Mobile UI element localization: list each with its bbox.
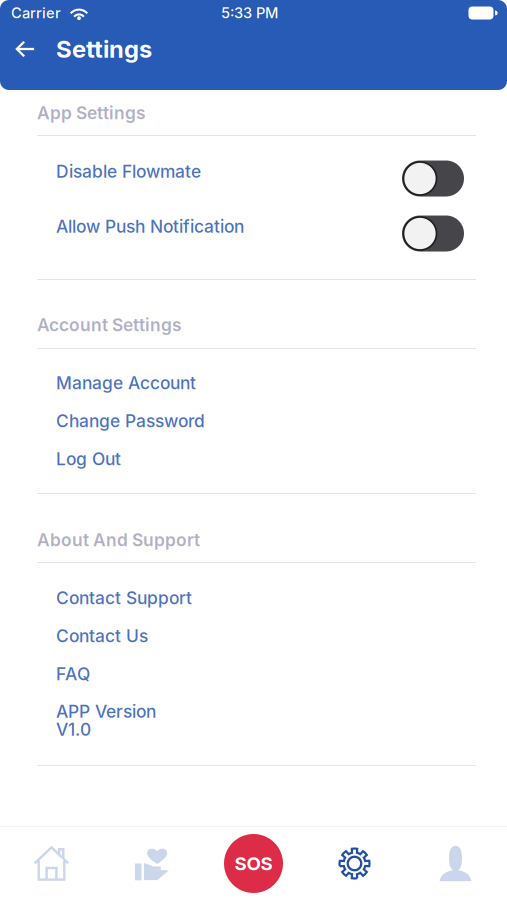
staticText: Contact Us	[56, 625, 148, 646]
staticText: App Settings	[37, 102, 146, 123]
staticText: Allow Push Notification	[56, 216, 244, 237]
staticText: FAQ	[56, 663, 90, 684]
button[interactable]: Settings	[304, 827, 405, 900]
staticText: Manage Account	[56, 372, 196, 393]
staticText: SOS	[234, 852, 272, 875]
button[interactable]: Contact Us	[0, 617, 507, 655]
staticText: 5:33 PM	[221, 4, 278, 22]
staticText: APP Version	[56, 701, 156, 722]
button[interactable]: FAQ	[0, 655, 507, 693]
button[interactable]: Disable Flowmate	[0, 144, 507, 199]
staticText: Disable Flowmate	[56, 161, 201, 182]
staticText: About And Support	[37, 529, 200, 550]
button[interactable]: Care	[102, 827, 203, 900]
staticText: Change Password	[56, 410, 205, 431]
button[interactable]: Contact Support	[0, 579, 507, 617]
button[interactable]: Manage Account	[0, 364, 507, 402]
staticText: Carrier	[11, 4, 61, 22]
staticText: Settings	[56, 34, 152, 63]
button[interactable]: Change Password	[0, 402, 507, 440]
button[interactable]: Allow Push Notification	[0, 199, 507, 254]
button[interactable]: APP Version	[0, 693, 507, 740]
staticText: Log Out	[56, 448, 121, 469]
button[interactable]: Log Out	[0, 440, 507, 478]
button[interactable]: SOS emergency	[203, 827, 304, 900]
staticText: V1.0	[56, 719, 91, 740]
button[interactable]: Profile	[405, 827, 506, 900]
staticText: Contact Support	[56, 587, 192, 608]
staticText: Account Settings	[37, 314, 182, 335]
button[interactable]: Back	[6, 30, 44, 68]
button[interactable]: Home	[1, 827, 102, 900]
